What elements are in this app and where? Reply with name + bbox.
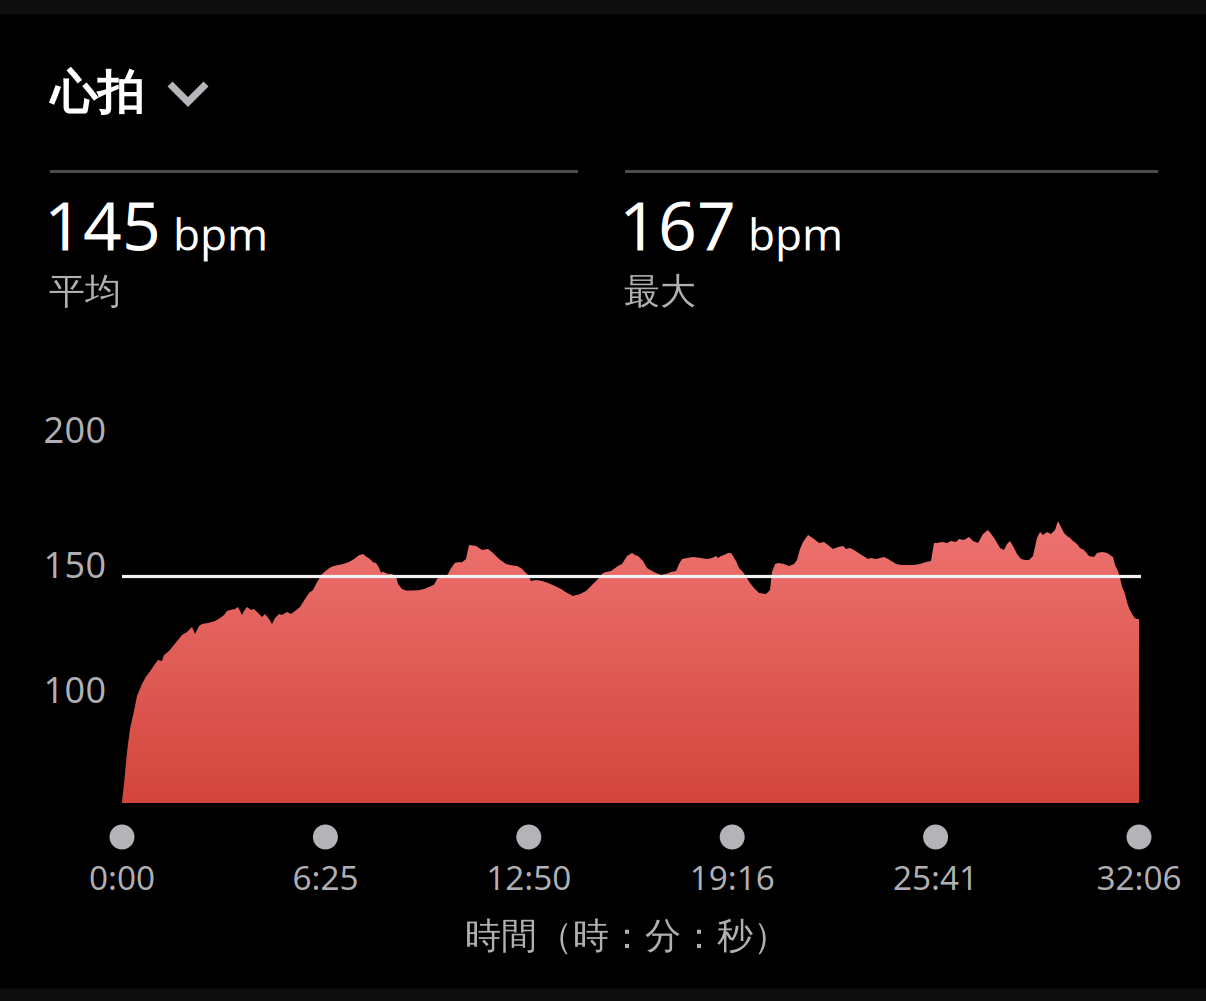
staticText: bpm [748,204,843,263]
staticText: 167 [619,179,736,269]
staticText: 100 [43,665,106,713]
staticText: 200 [43,405,106,453]
staticText: 25:41 [893,855,978,899]
staticText: 平均 [49,269,121,313]
staticText: 19:16 [690,855,775,899]
staticText: 6:25 [292,855,358,899]
staticText: 12:50 [486,855,571,899]
staticText: 時間（時：分：秒） [465,914,789,958]
staticText: 145 [44,179,161,269]
button[interactable]: 心拍 [50,56,1156,130]
staticText: 最大 [624,269,696,313]
staticText: 32:06 [1096,855,1181,899]
staticText: bpm [173,204,268,263]
staticText: 心拍 [50,64,144,122]
staticText: 150 [43,540,106,588]
staticText: 0:00 [89,855,155,899]
